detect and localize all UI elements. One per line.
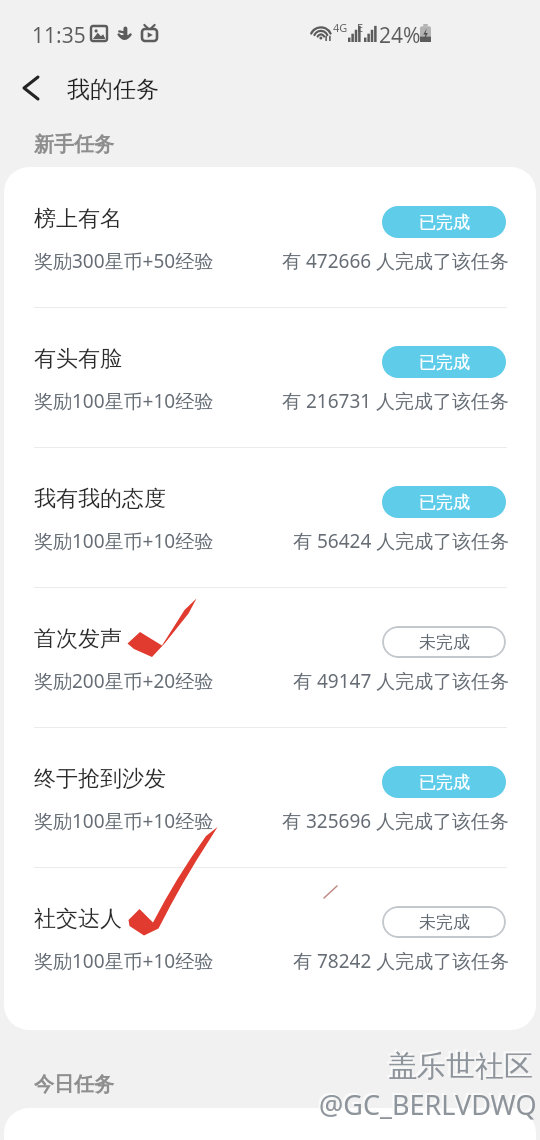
- staticText: 已完成: [419, 352, 470, 373]
- staticText: 我的任务: [67, 75, 159, 104]
- staticText: 有 325696 人完成了该任务: [282, 808, 510, 834]
- staticText: 有 56424 人完成了该任务: [293, 528, 510, 554]
- button[interactable]: 社交达人: [4, 867, 536, 1007]
- staticText: 4G: [333, 20, 348, 35]
- button[interactable]: 我有我的态度: [4, 447, 536, 587]
- button[interactable]: 已完成: [382, 206, 506, 238]
- staticText: 奖励100星币+10经验: [34, 388, 214, 414]
- staticText: 24%: [379, 21, 421, 50]
- staticText: 社交达人: [34, 905, 122, 933]
- button[interactable]: 首次发声: [4, 587, 536, 727]
- staticText: 榜上有名: [34, 205, 122, 233]
- staticText: 首次发声: [34, 625, 122, 653]
- button[interactable]: 未完成: [382, 626, 506, 658]
- staticText: 已完成: [419, 772, 470, 793]
- staticText: 终于抢到沙发: [34, 765, 166, 793]
- button[interactable]: 已完成: [382, 766, 506, 798]
- button[interactable]: Back: [3, 60, 59, 116]
- staticText: 未完成: [419, 912, 470, 933]
- staticText: 我有我的态度: [34, 485, 166, 513]
- staticText: 已完成: [419, 212, 470, 233]
- button[interactable]: 榜上有名: [4, 167, 536, 307]
- staticText: 盖乐世社区: [388, 1048, 533, 1085]
- button[interactable]: 未完成: [382, 906, 506, 938]
- staticText: 已完成: [419, 492, 470, 513]
- staticText: 有 216731 人完成了该任务: [282, 388, 510, 414]
- button[interactable]: 终于抢到沙发: [4, 727, 536, 867]
- staticText: 有 472666 人完成了该任务: [282, 248, 510, 274]
- staticText: 有 49147 人完成了该任务: [293, 668, 510, 694]
- staticText: 新手任务: [34, 132, 114, 157]
- staticText: 奖励100星币+10经验: [34, 808, 214, 834]
- staticText: 11:35: [32, 21, 86, 50]
- button[interactable]: 有头有脸: [4, 307, 536, 447]
- staticText: @GC_BERLVDWQ: [319, 1086, 537, 1123]
- staticText: 奖励300星币+50经验: [34, 248, 214, 274]
- staticText: 有 78242 人完成了该任务: [293, 948, 510, 974]
- staticText: 有头有脸: [34, 345, 122, 373]
- staticText: E: [357, 20, 364, 35]
- staticText: 奖励200星币+20经验: [34, 668, 214, 694]
- button[interactable]: 已完成: [382, 346, 506, 378]
- staticText: 盖乐世社区: [386, 1046, 531, 1083]
- staticText: 未完成: [419, 632, 470, 653]
- button[interactable]: 已完成: [382, 486, 506, 518]
- staticText: @GC_BERLVDWQ: [317, 1084, 535, 1121]
- staticText: 奖励100星币+10经验: [34, 948, 214, 974]
- staticText: 今日任务: [34, 1072, 114, 1097]
- staticText: 奖励100星币+10经验: [34, 528, 214, 554]
